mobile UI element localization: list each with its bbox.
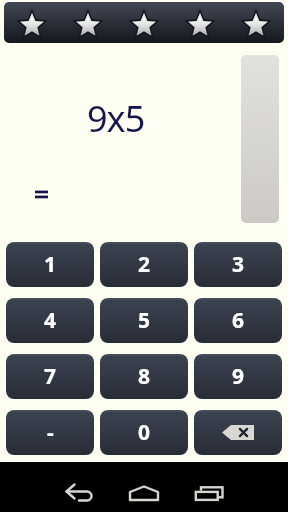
button[interactable]: 0 bbox=[100, 410, 188, 455]
staticText: 5 bbox=[138, 306, 151, 335]
button[interactable] bbox=[241, 55, 279, 223]
staticText: - bbox=[47, 418, 54, 447]
button[interactable] bbox=[192, 462, 288, 512]
staticText: 0 bbox=[138, 418, 151, 447]
staticText: 8 bbox=[138, 362, 151, 391]
button[interactable]: 6 bbox=[194, 298, 282, 343]
button[interactable]: 5 bbox=[100, 298, 188, 343]
staticText: 6 bbox=[232, 306, 245, 335]
staticText: 1 bbox=[44, 250, 57, 279]
button[interactable]: 8 bbox=[100, 354, 188, 399]
button[interactable] bbox=[0, 462, 96, 512]
staticText: 9 bbox=[232, 362, 245, 391]
staticText: 7 bbox=[44, 362, 57, 391]
staticText: 9x5 bbox=[87, 94, 145, 143]
button[interactable]: - bbox=[6, 410, 94, 455]
staticText: 2 bbox=[138, 250, 151, 279]
button[interactable]: 4 bbox=[6, 298, 94, 343]
button[interactable]: 2 bbox=[100, 242, 188, 287]
button[interactable]: 3 bbox=[194, 242, 282, 287]
button[interactable]: 1 bbox=[6, 242, 94, 287]
button[interactable] bbox=[4, 2, 284, 43]
button[interactable] bbox=[96, 462, 192, 512]
staticText: 3 bbox=[232, 250, 245, 279]
button[interactable]: 7 bbox=[6, 354, 94, 399]
staticText: 4 bbox=[44, 306, 57, 335]
button[interactable]: 9 bbox=[194, 354, 282, 399]
button[interactable] bbox=[194, 410, 282, 455]
